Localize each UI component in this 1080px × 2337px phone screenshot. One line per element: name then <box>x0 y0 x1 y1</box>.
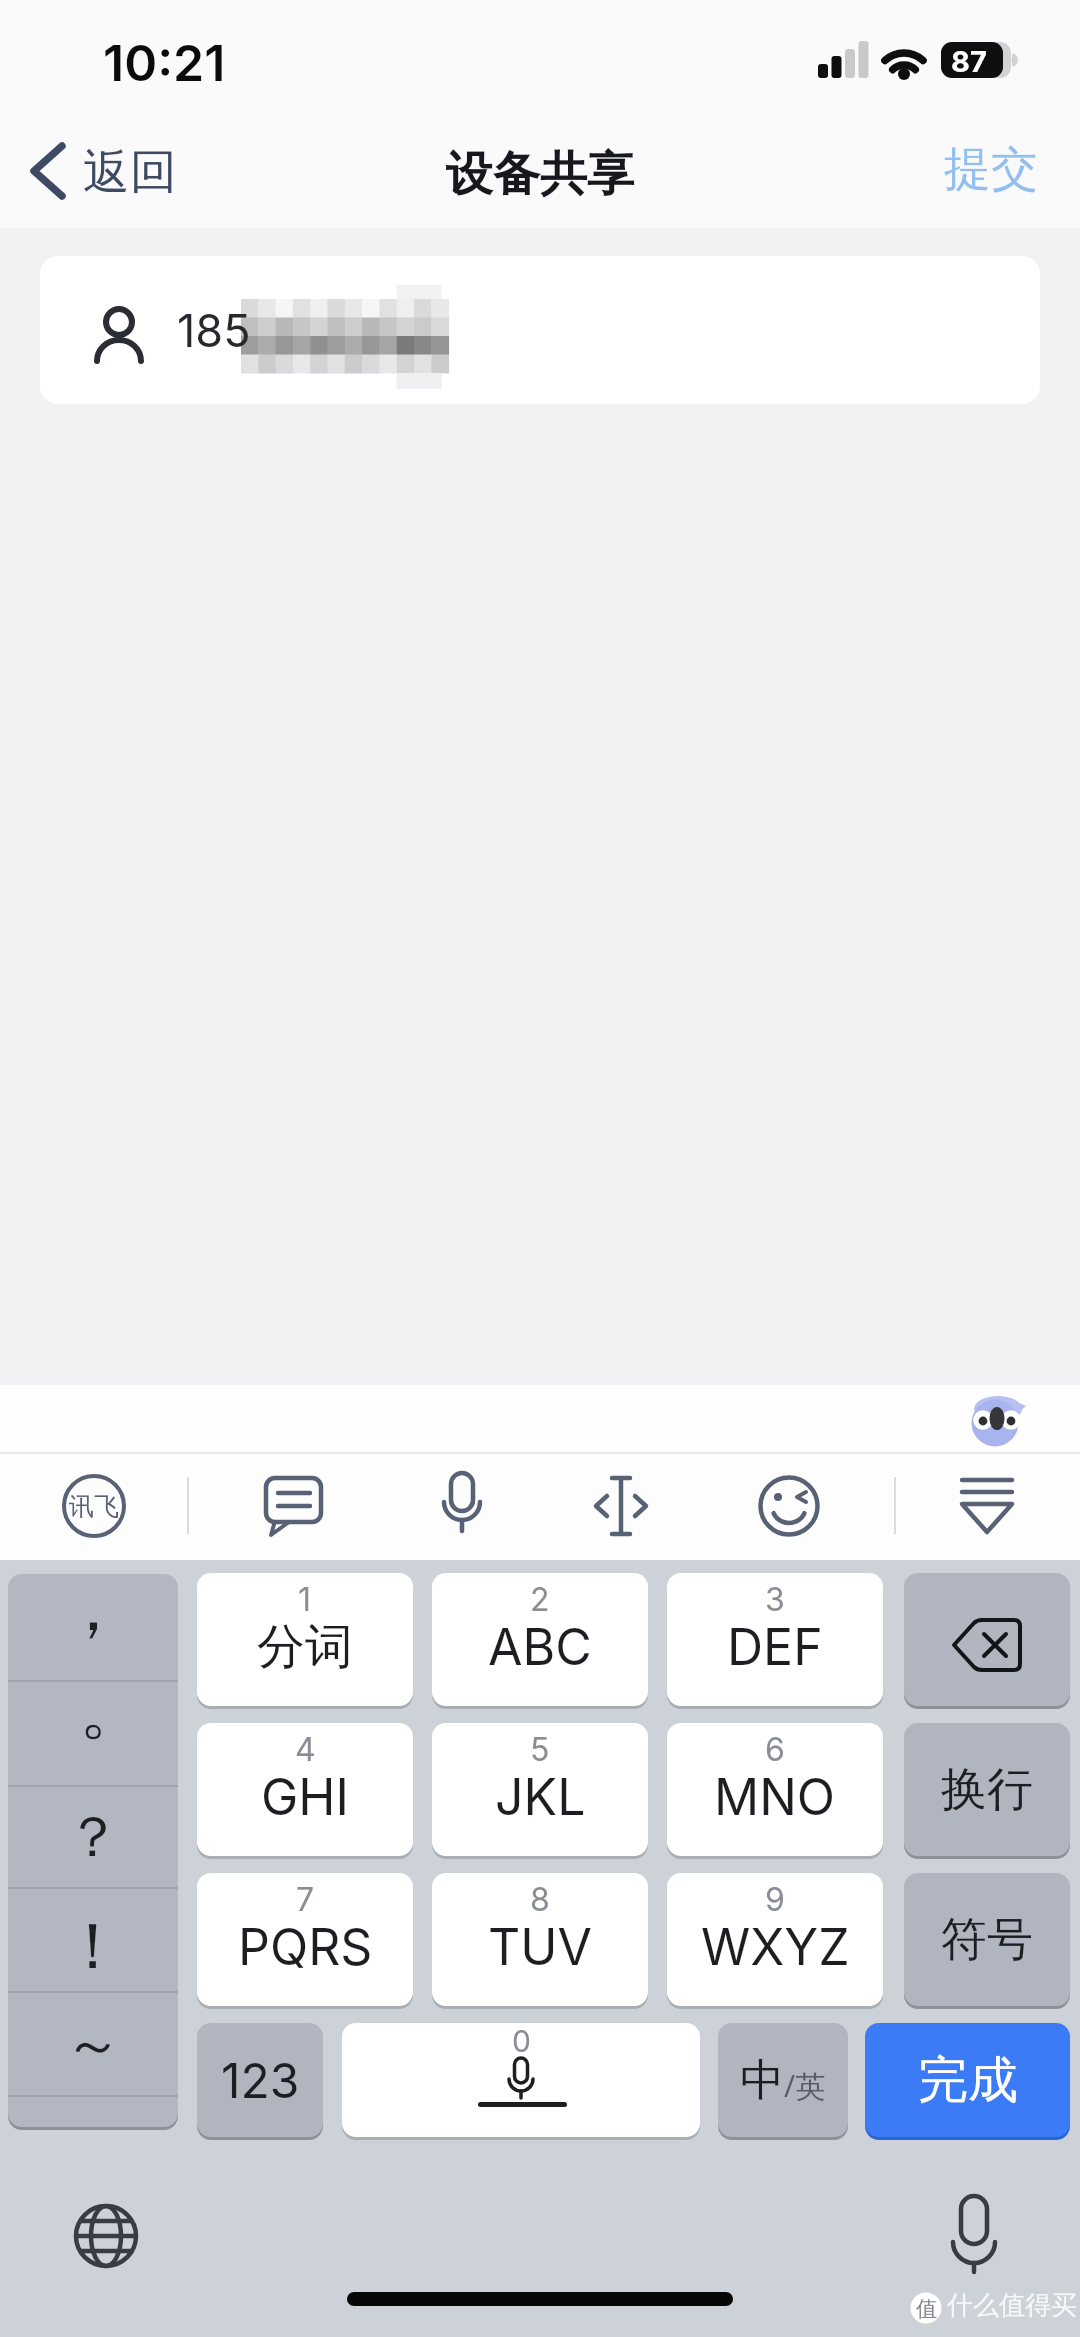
button[interactable]: 8 <box>432 1873 648 2006</box>
button[interactable]: 0 <box>342 2023 700 2137</box>
staticText: 5 <box>530 1730 550 1769</box>
button[interactable]: 3 <box>667 1573 883 1706</box>
staticText: 2 <box>530 1580 550 1619</box>
staticText: 6 <box>765 1730 785 1769</box>
staticText: PQRS <box>238 1917 373 1977</box>
button[interactable]: 6 <box>667 1723 883 1856</box>
staticText: ！ <box>61 1906 125 1987</box>
button[interactable]: 2 <box>432 1573 648 1706</box>
button[interactable]: 返回 <box>20 130 230 216</box>
staticText: 。 <box>79 1667 147 1753</box>
staticText: ABC <box>488 1617 592 1677</box>
staticText: MNO <box>714 1767 836 1827</box>
staticText: 设备共享 <box>446 145 634 204</box>
button[interactable]: 换行 <box>904 1723 1070 1856</box>
staticText: 提交 <box>944 140 1038 199</box>
staticText: 3 <box>765 1580 785 1619</box>
staticText: 什么值得买 <box>947 2289 1077 2322</box>
button[interactable] <box>749 1466 829 1546</box>
staticText: 返回 <box>83 143 177 202</box>
button[interactable]: 讯飞 <box>54 1466 134 1546</box>
staticText: 4 <box>295 1730 316 1769</box>
button[interactable] <box>934 2188 1014 2280</box>
staticText: 9 <box>765 1880 785 1919</box>
staticText: 185 <box>177 303 251 357</box>
button[interactable] <box>422 1464 502 1544</box>
staticText: 1 <box>298 1580 312 1619</box>
staticText: 换行 <box>941 1761 1033 1819</box>
button[interactable]: 5 <box>432 1723 648 1856</box>
button[interactable] <box>966 1393 1030 1453</box>
staticText: 10:21 <box>103 33 226 93</box>
button[interactable] <box>947 1466 1027 1546</box>
staticText: 中 <box>740 2053 784 2108</box>
button[interactable]: 4 <box>197 1723 413 1856</box>
staticText: 87 <box>951 44 987 79</box>
staticText: /英 <box>784 2065 826 2106</box>
staticText: 值 <box>916 2296 937 2322</box>
staticText: 0 <box>512 2023 531 2059</box>
button[interactable] <box>253 1466 333 1546</box>
staticText: JKL <box>495 1767 586 1827</box>
button[interactable] <box>8 1574 178 2127</box>
button[interactable]: 1 <box>197 1573 413 1706</box>
staticText: TUV <box>488 1917 592 1977</box>
staticText: 分词 <box>257 1617 353 1677</box>
button[interactable] <box>581 1466 661 1546</box>
staticText: 完成 <box>918 2049 1018 2112</box>
staticText: 讯飞 <box>69 1491 119 1522</box>
button[interactable]: 符号 <box>904 1873 1070 2006</box>
button[interactable]: 完成 <box>865 2023 1070 2137</box>
button[interactable]: 7 <box>197 1873 413 2006</box>
staticText: DEF <box>727 1617 823 1677</box>
button[interactable] <box>904 1573 1070 1706</box>
button[interactable]: 中 <box>718 2023 848 2137</box>
staticText: ？ <box>65 1802 121 1873</box>
staticText: GHI <box>261 1767 349 1827</box>
button[interactable] <box>66 2196 146 2276</box>
staticText: ～ <box>64 2008 122 2081</box>
staticText: WXYZ <box>701 1917 850 1977</box>
button[interactable]: 123 <box>197 2023 323 2137</box>
button[interactable]: 9 <box>667 1873 883 2006</box>
staticText: ， <box>60 1566 126 1649</box>
staticText: 符号 <box>941 1911 1033 1969</box>
button[interactable]: 提交 <box>930 134 1050 210</box>
staticText: 123 <box>221 2051 300 2109</box>
button[interactable]: 185 <box>40 256 1040 404</box>
staticText: 8 <box>530 1880 550 1919</box>
staticText: 7 <box>296 1880 315 1919</box>
